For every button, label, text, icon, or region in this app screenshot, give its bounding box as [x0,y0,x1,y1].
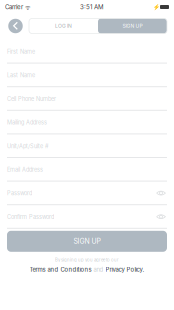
staticText: ᯤ [23,3,31,11]
staticText: Email Address [7,166,43,173]
staticText: LOG IN [55,23,72,29]
button[interactable]: Privacy Policy. [105,266,144,273]
staticText: First Name [7,48,35,55]
button[interactable]: Terms and Conditions [29,266,91,273]
staticText: Carrier [5,3,23,11]
button[interactable]: Back [8,18,23,33]
staticText: By signing up you agree to our [55,257,119,262]
button[interactable]: SIGN UP [7,231,167,252]
button[interactable]: Show Confirm Password [155,211,167,223]
staticText: Confirm Password [7,213,54,220]
button[interactable]: LOG IN [29,18,98,33]
button[interactable]: Show Password [155,187,167,200]
staticText: 3:51 AM [80,3,104,11]
button[interactable]: SIGN UP [98,18,167,33]
staticText: SIGN UP [73,237,100,245]
staticText: and [93,266,103,273]
staticText: SIGN UP [122,23,142,29]
staticText: Mailing Address [7,119,47,126]
staticText: Cell Phone Number [7,95,56,102]
staticText: Privacy Policy. [105,266,144,273]
staticText: Unit/Apt/Suite # [7,143,49,149]
staticText: Terms and Conditions [29,266,91,273]
staticText: Password [7,190,32,197]
staticText: Last Name [7,72,35,79]
staticText: ⚡ [153,4,160,10]
